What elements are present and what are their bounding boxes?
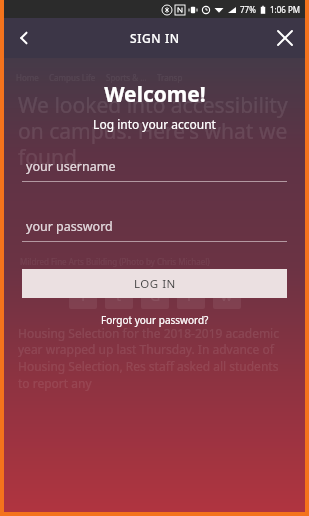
staticText: Forgot your password?: [101, 313, 209, 327]
button[interactable]: LOG IN: [22, 269, 287, 298]
staticText: Transp: [157, 72, 183, 83]
staticText: Campus Life: [49, 72, 96, 83]
staticText: Home: [16, 72, 39, 83]
staticText: Welcome!: [104, 80, 206, 109]
staticText: Mildred Fine Arts Building (Photo by Chr…: [20, 256, 210, 267]
button[interactable]: Back: [4, 18, 44, 58]
staticText: We looked into accessibility on campus. …: [18, 91, 291, 172]
staticText: P: [187, 286, 196, 305]
staticText: 1:06 PM: [270, 4, 301, 15]
staticText: G: [150, 286, 161, 305]
button[interactable]: your password: [22, 218, 287, 242]
staticText: SIGN IN: [130, 30, 180, 46]
staticText: Log into your account: [93, 116, 216, 132]
staticText: w: [221, 286, 233, 305]
staticText: your password: [26, 218, 113, 235]
staticText: your username: [26, 158, 116, 175]
staticText: 77%: [240, 4, 256, 15]
staticText: LOG IN: [134, 276, 176, 292]
staticText: Housing Selection for the 2018-2019 acad…: [18, 325, 291, 392]
button[interactable]: Close: [265, 18, 305, 58]
staticText: t: [116, 286, 122, 305]
button[interactable]: your username: [22, 158, 287, 182]
staticText: Sports & ...: [106, 72, 147, 83]
button[interactable]: Forgot your password?: [93, 311, 217, 329]
staticText: f: [81, 286, 86, 305]
